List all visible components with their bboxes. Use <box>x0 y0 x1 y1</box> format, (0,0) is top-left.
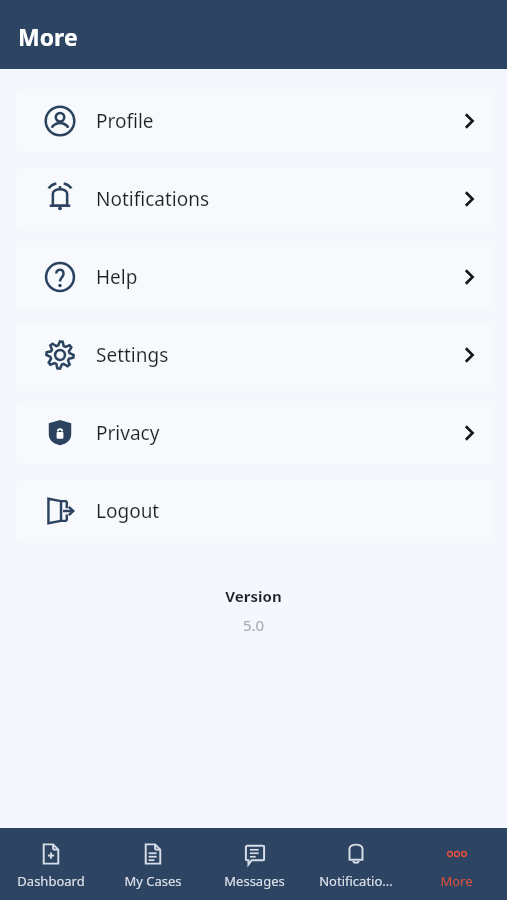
button[interactable]: More <box>406 833 507 896</box>
button[interactable]: Notifications <box>16 168 491 230</box>
button[interactable]: Profile <box>16 90 491 152</box>
button[interactable]: Privacy <box>16 402 491 464</box>
staticText: More <box>18 21 78 52</box>
staticText: My Cases <box>124 872 182 890</box>
button[interactable]: Notificatio... <box>305 833 406 896</box>
button[interactable]: My Cases <box>102 833 204 896</box>
staticText: Version <box>0 586 507 606</box>
staticText: 5.0 <box>0 615 507 635</box>
staticText: Messages <box>224 872 285 890</box>
button[interactable]: Messages <box>204 833 305 896</box>
staticText: Profile <box>96 108 154 134</box>
staticText: Settings <box>96 342 169 368</box>
staticText: Dashboard <box>17 872 85 890</box>
staticText: Notificatio... <box>319 872 393 890</box>
button[interactable]: Logout <box>16 480 491 542</box>
staticText: Notifications <box>96 186 210 212</box>
staticText: Help <box>96 264 138 290</box>
staticText: Privacy <box>96 420 160 446</box>
staticText: More <box>440 872 473 890</box>
button[interactable]: Settings <box>16 324 491 386</box>
button[interactable]: Dashboard <box>0 833 102 896</box>
button[interactable]: Help <box>16 246 491 308</box>
staticText: Logout <box>96 498 160 524</box>
